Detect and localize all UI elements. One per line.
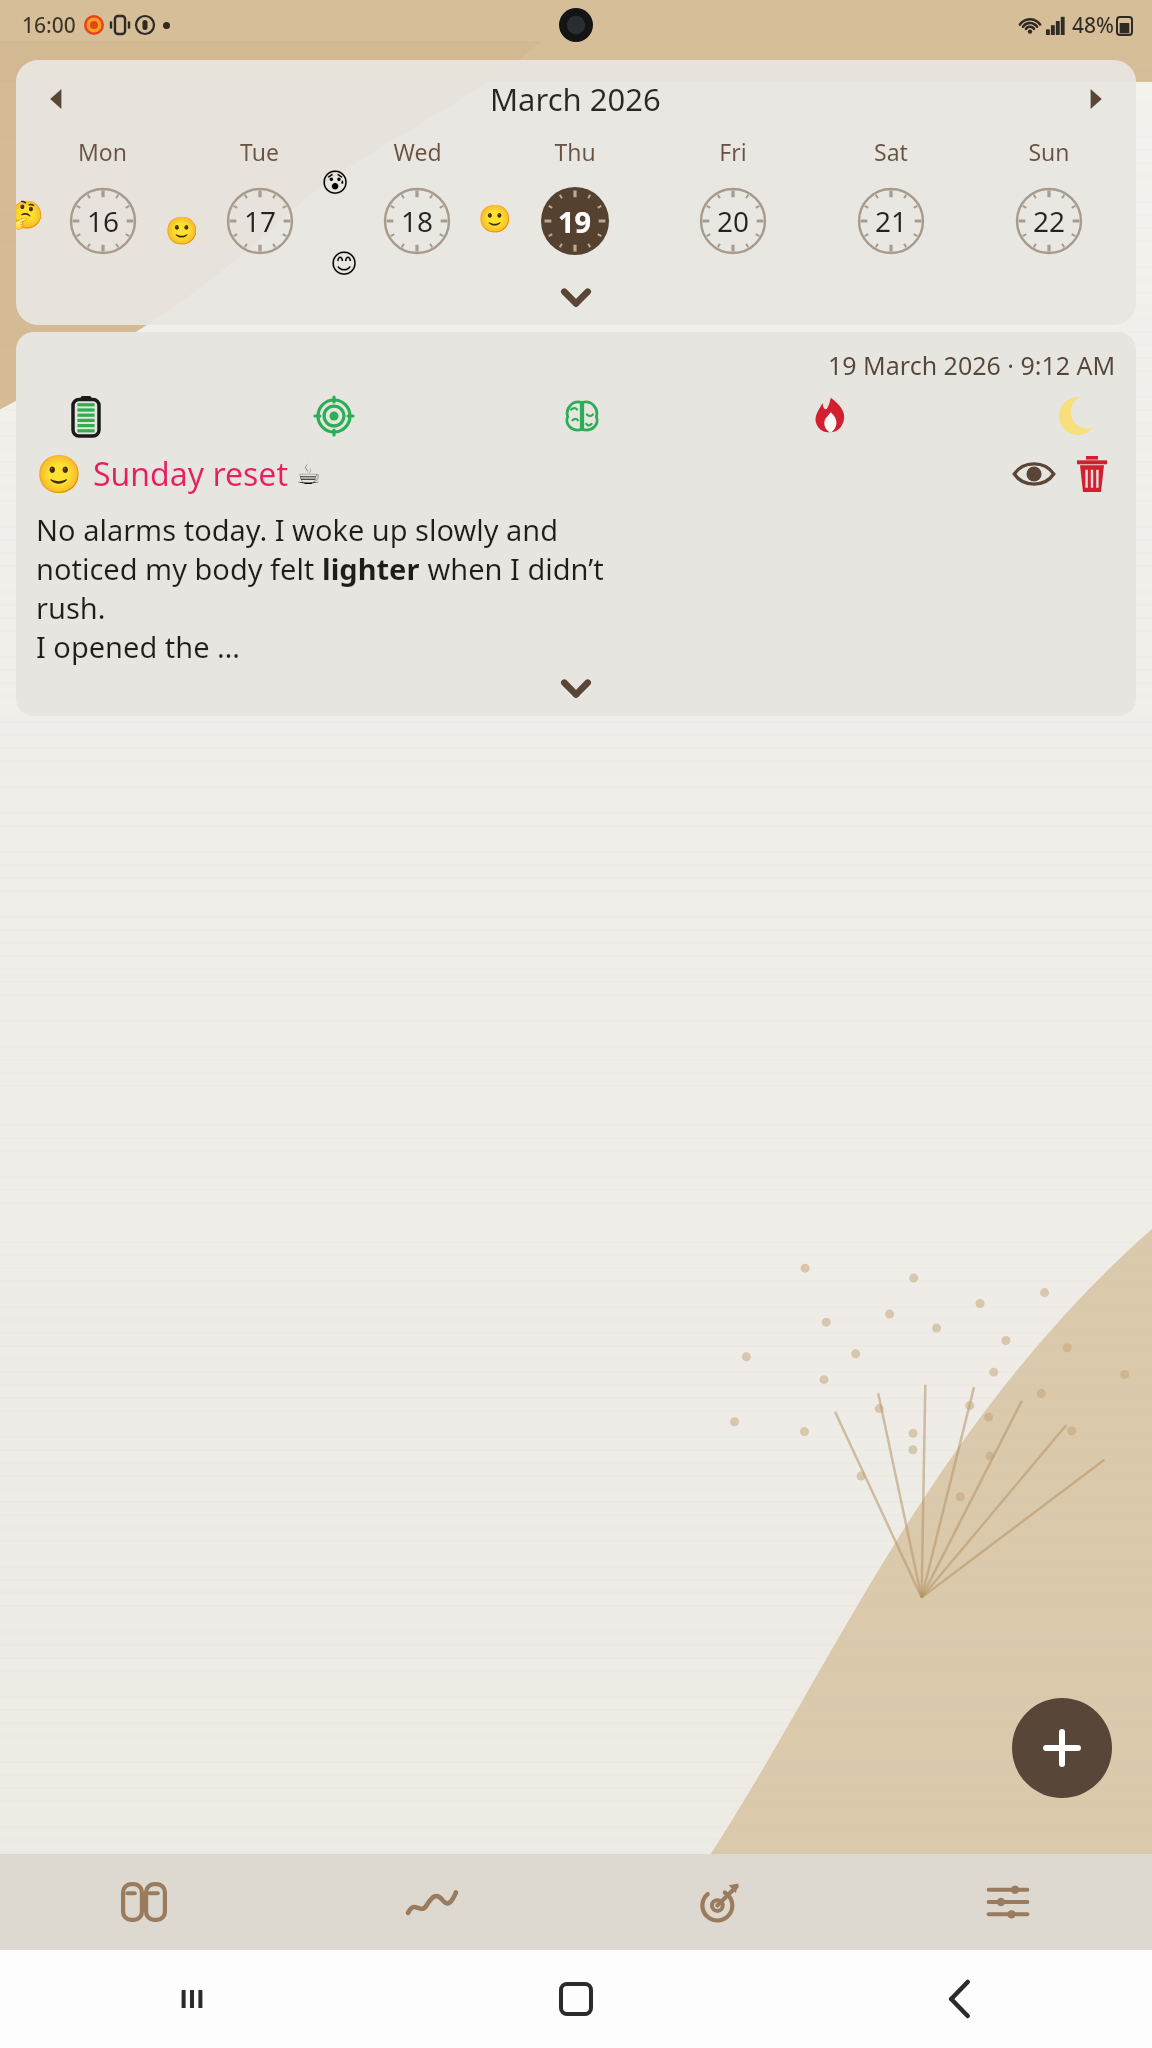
button[interactable]: Goals	[576, 1854, 864, 1950]
staticText: lighter	[322, 549, 420, 588]
button[interactable]: Recents	[0, 1950, 384, 2048]
staticText: 16	[87, 202, 120, 240]
button[interactable]: 19	[496, 175, 654, 267]
staticText: Fri	[719, 136, 747, 167]
staticText: Wed	[393, 136, 442, 167]
button[interactable]: Back	[768, 1950, 1152, 2048]
staticText: Mon	[78, 136, 127, 167]
staticText: 20	[717, 202, 750, 240]
staticText: 🙂	[36, 453, 83, 496]
staticText: Thu	[554, 136, 596, 167]
staticText: Sun	[1028, 136, 1070, 167]
staticText: 19 March 2026 · 9:12 AM	[828, 348, 1116, 382]
staticText: 18	[401, 202, 434, 240]
staticText: Tue	[240, 136, 279, 167]
staticText: March 2026	[490, 78, 661, 120]
button[interactable]: 16	[24, 175, 181, 267]
staticText: 17	[244, 202, 277, 240]
staticText: 🤔	[16, 199, 44, 231]
button[interactable]: Add entry	[1012, 1698, 1112, 1798]
staticText: 19	[558, 202, 592, 241]
staticText: 🙂	[165, 215, 199, 247]
staticText: rush.	[36, 588, 106, 627]
button[interactable]: 18	[338, 175, 496, 267]
button[interactable]: Settings	[864, 1854, 1152, 1950]
staticText: Sat	[874, 136, 908, 167]
staticText: noticed my body felt	[36, 549, 322, 588]
staticText: 🙂	[478, 203, 512, 235]
staticText: 22	[1033, 202, 1066, 240]
button[interactable]: View entry	[1010, 450, 1058, 498]
button[interactable]: Insights	[288, 1854, 576, 1950]
staticText: I opened the …	[36, 627, 240, 666]
button[interactable]: Expand calendar	[16, 277, 1136, 317]
button[interactable]: Expand entry	[36, 666, 1116, 710]
button[interactable]: 20	[654, 175, 812, 267]
button[interactable]: Home	[384, 1950, 768, 2048]
staticText: Sunday reset	[93, 452, 288, 496]
button[interactable]: Next month	[1072, 76, 1118, 122]
staticText: 21	[875, 202, 908, 240]
staticText: 😊	[330, 248, 359, 279]
staticText: 😰	[321, 167, 350, 198]
staticText: when I didn’t	[420, 549, 604, 588]
staticText: ☕	[296, 458, 322, 491]
staticText: No alarms today. I woke up slowly and	[36, 510, 559, 549]
button[interactable]: 22	[970, 175, 1128, 267]
staticText: 16:00	[22, 11, 76, 40]
button[interactable]: 21	[812, 175, 970, 267]
button[interactable]: Previous month	[34, 76, 80, 122]
button[interactable]: 17	[181, 175, 338, 267]
staticText: 48%	[1072, 11, 1114, 40]
button[interactable]: Journal	[0, 1854, 288, 1950]
button[interactable]: Delete entry	[1068, 450, 1116, 498]
